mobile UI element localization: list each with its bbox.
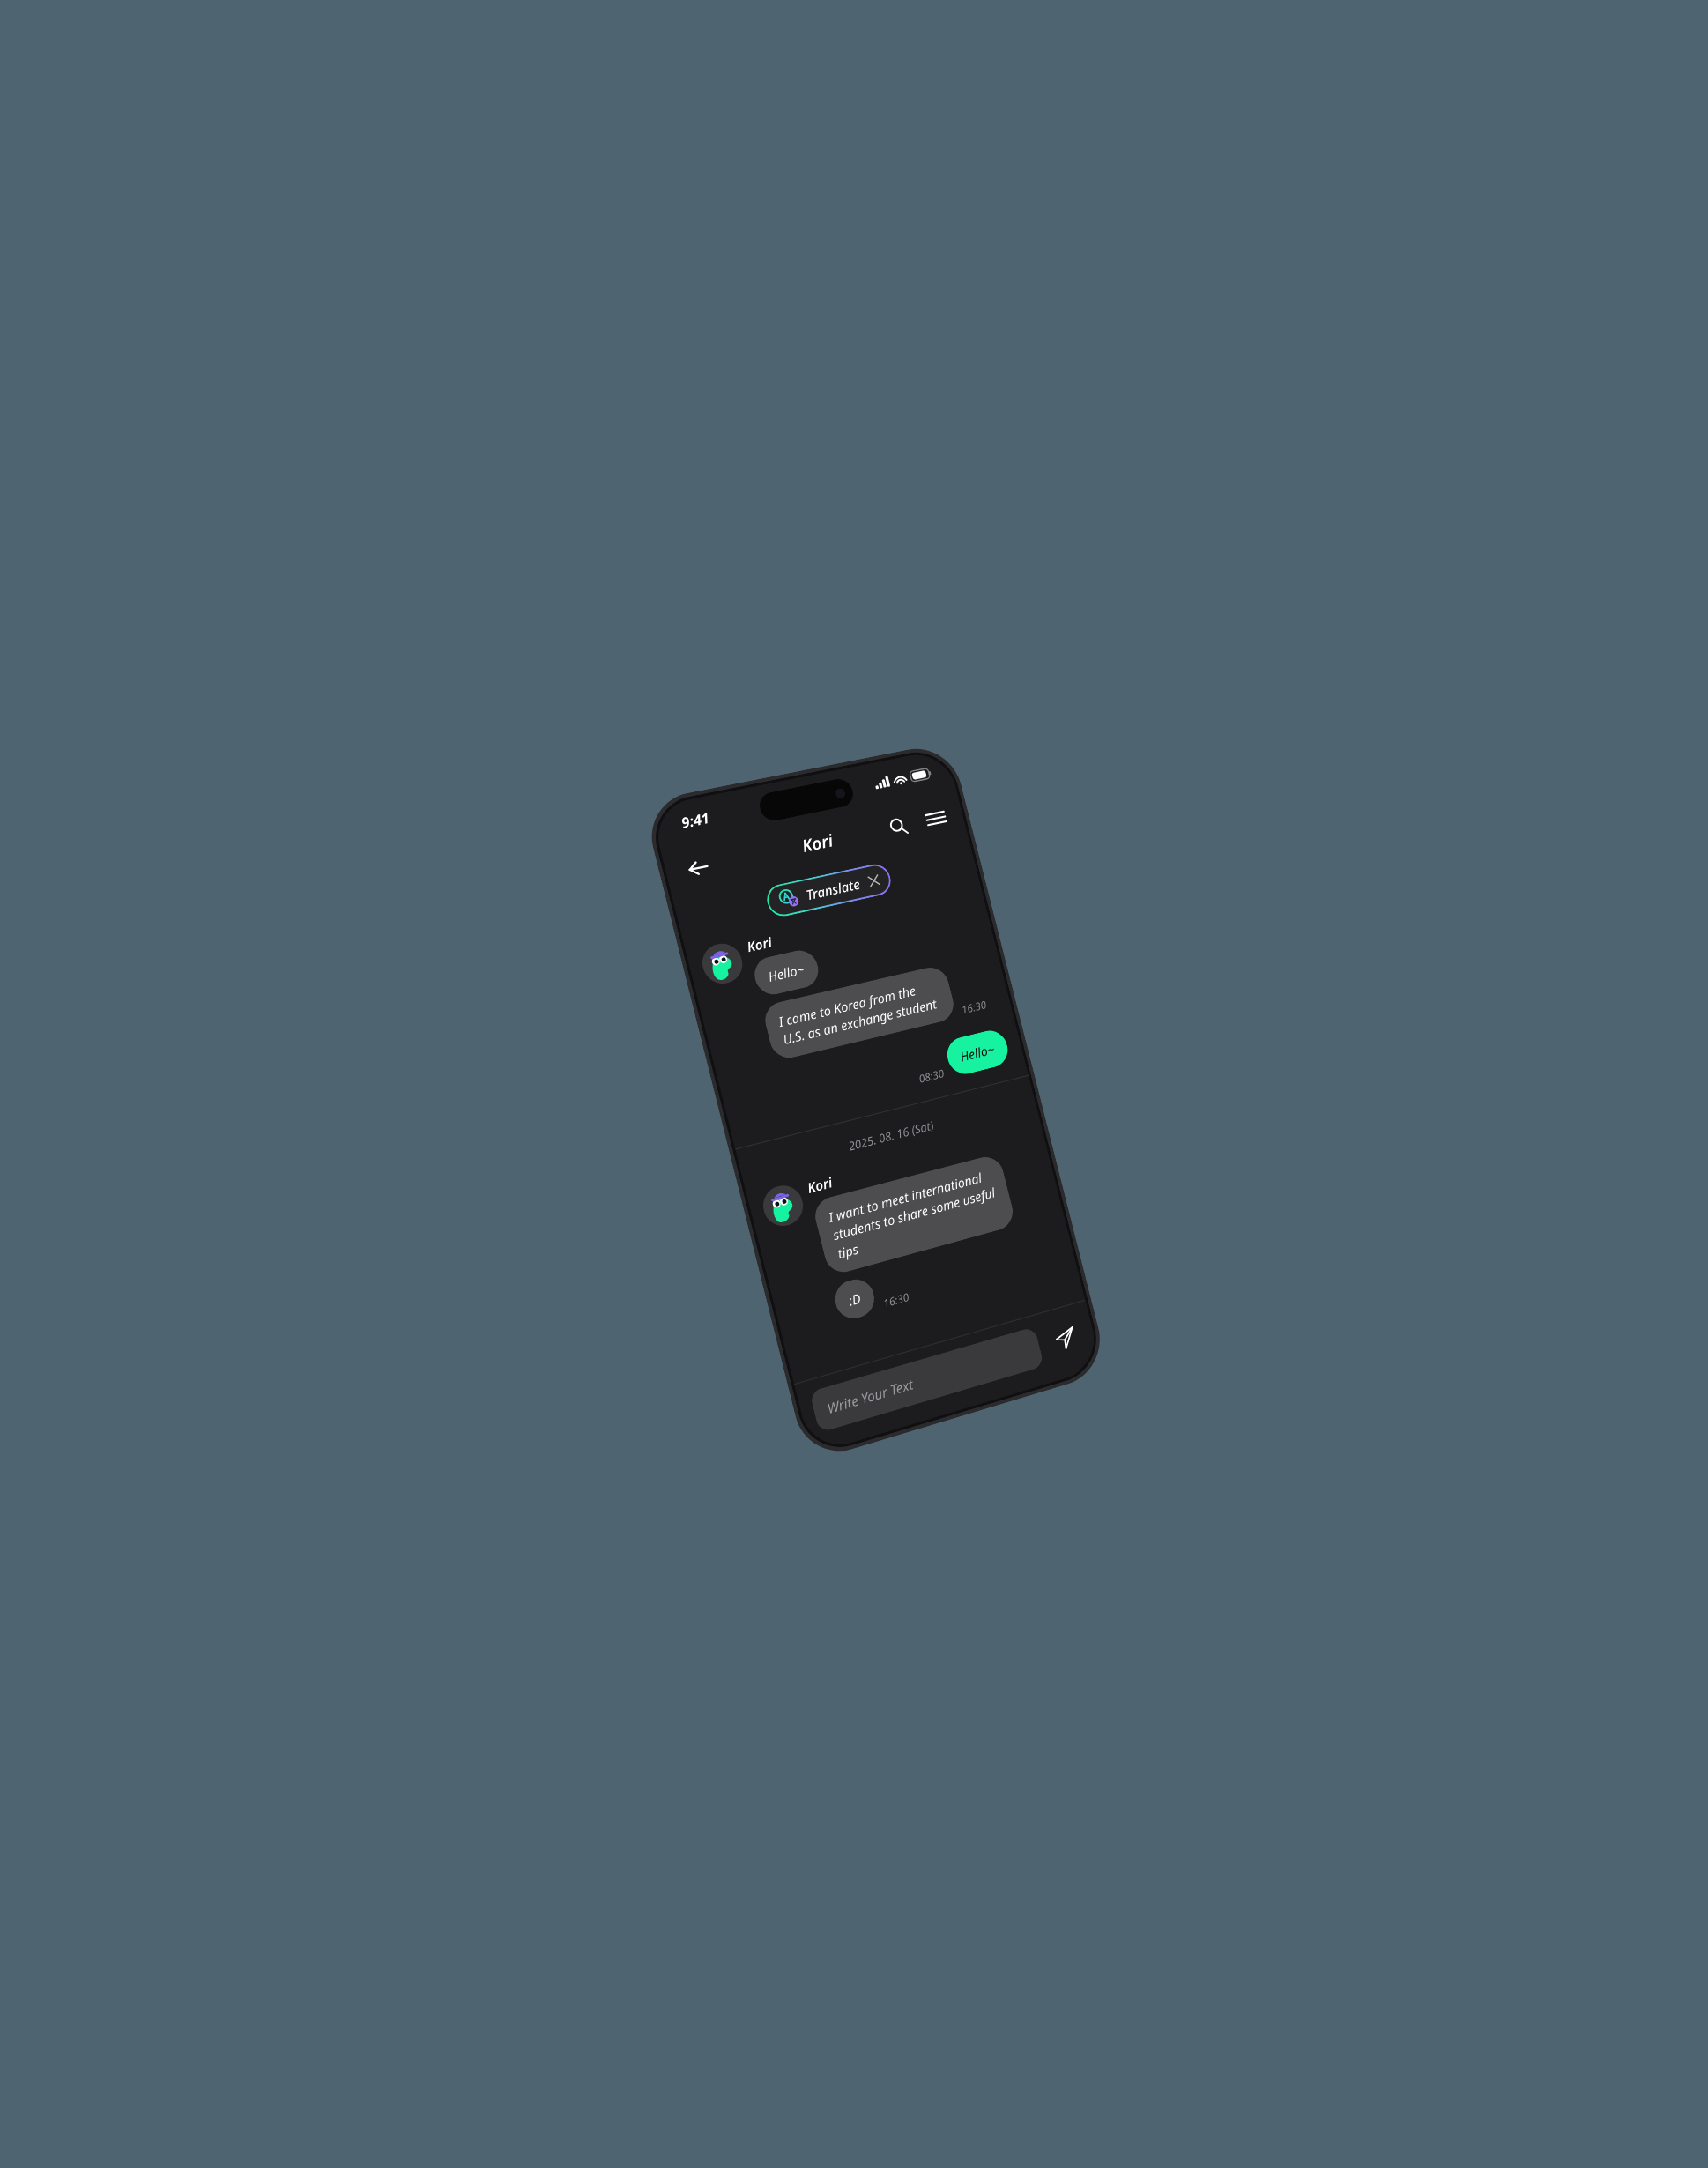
button[interactable]: Back bbox=[676, 847, 720, 889]
button[interactable]: Menu bbox=[915, 798, 957, 839]
staticText: Translate bbox=[804, 875, 862, 904]
staticText: :D bbox=[847, 1288, 863, 1309]
button[interactable]: Write Your Text bbox=[809, 1326, 1044, 1433]
button[interactable]: :D bbox=[831, 1275, 878, 1323]
staticText: 2025. 08. 16 (Sat) bbox=[847, 1117, 936, 1154]
button[interactable]: I came to Korea from the U.S. as an exch… bbox=[761, 964, 958, 1062]
button[interactable]: Translate bbox=[763, 861, 894, 919]
staticText: Hello~ bbox=[766, 959, 807, 985]
button[interactable]: Hello~ bbox=[943, 1027, 1012, 1078]
staticText: Write Your Text bbox=[825, 1375, 915, 1417]
button[interactable]: Send bbox=[1045, 1317, 1086, 1361]
staticText: 08:30 bbox=[917, 1065, 946, 1085]
staticText: 16:30 bbox=[882, 1289, 911, 1310]
button[interactable]: I want to meet international students to… bbox=[811, 1153, 1017, 1276]
staticText: Hello~ bbox=[958, 1039, 997, 1065]
staticText: Kori bbox=[799, 829, 836, 858]
button[interactable]: Hello~ bbox=[751, 947, 822, 998]
staticText: Kori bbox=[745, 932, 775, 956]
button[interactable]: Search bbox=[877, 806, 919, 847]
staticText: 9:41 bbox=[679, 808, 712, 833]
staticText: Kori bbox=[805, 1173, 835, 1197]
staticText: 16:30 bbox=[960, 997, 988, 1016]
staticText: I came to Korea from the U.S. as an exch… bbox=[777, 976, 943, 1049]
staticText: I want to meet international students to… bbox=[827, 1166, 1002, 1263]
